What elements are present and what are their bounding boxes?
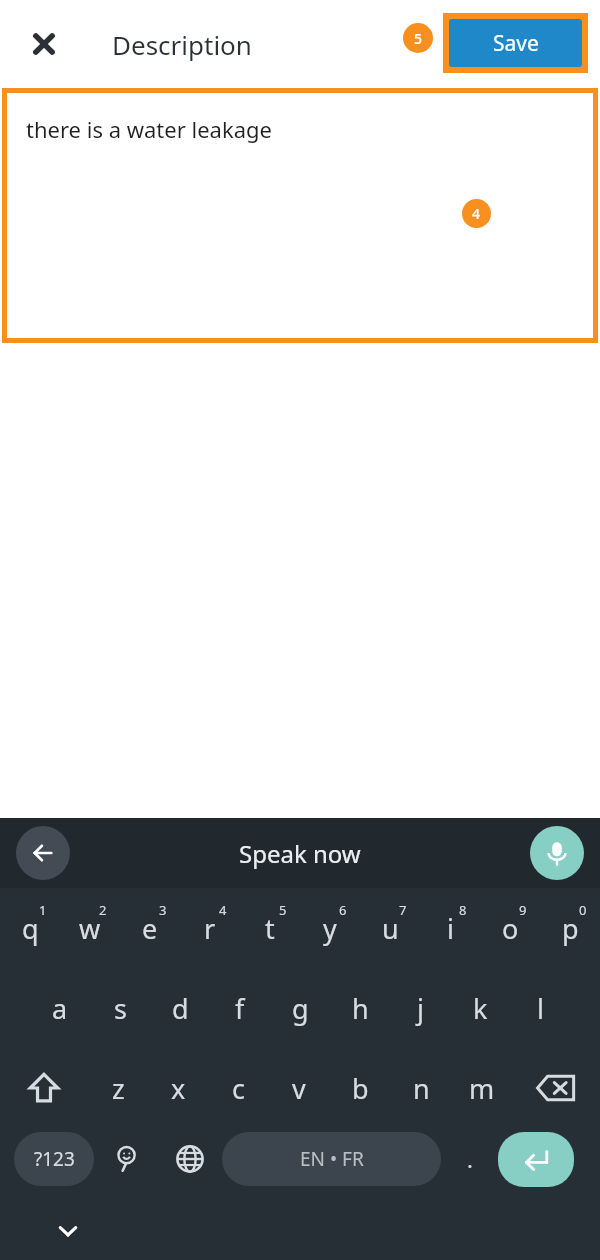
staticText: u	[382, 910, 399, 947]
staticText: 6	[339, 901, 347, 919]
button[interactable]: Enter	[498, 1132, 574, 1187]
staticText: 5	[279, 901, 287, 919]
staticText: z	[112, 1070, 125, 1107]
staticText: d	[172, 990, 189, 1027]
staticText: ?123	[34, 1146, 75, 1172]
staticText: 7	[399, 901, 407, 919]
staticText: Description	[112, 27, 252, 62]
staticText: l	[537, 990, 544, 1027]
button[interactable]: b	[331, 1049, 389, 1127]
staticText: w	[79, 910, 101, 947]
button[interactable]: g	[271, 969, 329, 1047]
staticText: g	[292, 990, 309, 1027]
button[interactable]: o	[481, 889, 539, 967]
button[interactable]: Back	[16, 826, 70, 880]
staticText: i	[447, 910, 454, 947]
staticText: 5	[414, 29, 423, 48]
button[interactable]: Emoji	[94, 1132, 158, 1186]
staticText: b	[352, 1070, 369, 1107]
staticText: there is a water leakage	[26, 114, 272, 144]
button[interactable]: q	[1, 889, 59, 967]
staticText: EN • FR	[300, 1146, 364, 1172]
staticText: 8	[459, 901, 467, 919]
staticText: r	[204, 910, 216, 947]
button[interactable]: k	[451, 969, 509, 1047]
button[interactable]: u	[361, 889, 419, 967]
button[interactable]: Close	[22, 22, 66, 66]
staticText: v	[292, 1070, 306, 1107]
button[interactable]: s	[91, 969, 149, 1047]
button[interactable]: Shift	[0, 1049, 88, 1127]
button[interactable]: t	[241, 889, 299, 967]
button[interactable]: f	[211, 969, 269, 1047]
button[interactable]: i	[421, 889, 479, 967]
button[interactable]: v	[270, 1049, 328, 1127]
button[interactable]: j	[391, 969, 449, 1047]
staticText: p	[562, 910, 579, 947]
staticText: n	[413, 1070, 430, 1107]
button[interactable]: Change language	[158, 1132, 222, 1186]
staticText: 3	[159, 901, 167, 919]
staticText: m	[469, 1070, 495, 1107]
button[interactable]: there is a water leakage	[2, 88, 598, 343]
button[interactable]: p	[541, 889, 599, 967]
button[interactable]: .	[441, 1132, 498, 1186]
staticText: t	[265, 910, 275, 947]
staticText: h	[352, 990, 369, 1027]
staticText: a	[52, 990, 68, 1027]
staticText: s	[114, 990, 127, 1027]
button[interactable]: y	[301, 889, 359, 967]
staticText: x	[171, 1070, 186, 1107]
staticText: e	[142, 910, 158, 947]
staticText: Save	[493, 29, 539, 58]
staticText: q	[22, 910, 39, 947]
staticText: j	[417, 990, 424, 1027]
button[interactable]: m	[453, 1049, 511, 1127]
button[interactable]: x	[149, 1049, 207, 1127]
button[interactable]: d	[151, 969, 209, 1047]
staticText: f	[235, 990, 245, 1027]
staticText: 9	[519, 901, 527, 919]
button[interactable]: Save	[449, 19, 582, 67]
staticText: y	[323, 910, 337, 947]
button[interactable]: Microphone	[530, 826, 584, 880]
button[interactable]: r	[181, 889, 239, 967]
button[interactable]: z	[89, 1049, 147, 1127]
button[interactable]: e	[121, 889, 179, 967]
button[interactable]: EN • FR	[222, 1132, 441, 1186]
button[interactable]: ?123	[14, 1132, 94, 1186]
staticText: Speak now	[239, 837, 361, 870]
button[interactable]: Hide keyboard	[48, 1211, 88, 1251]
staticText: 4	[219, 901, 227, 919]
staticText: k	[473, 990, 488, 1027]
button[interactable]: l	[511, 969, 569, 1047]
staticText: 0	[579, 901, 587, 919]
button[interactable]: w	[61, 889, 119, 967]
button[interactable]: n	[392, 1049, 450, 1127]
staticText: 4	[472, 204, 481, 223]
button[interactable]: a	[31, 969, 89, 1047]
button[interactable]: h	[331, 969, 389, 1047]
button[interactable]: c	[209, 1049, 267, 1127]
staticText: c	[232, 1070, 245, 1107]
staticText: .	[467, 1144, 473, 1174]
staticText: 2	[99, 901, 107, 919]
button[interactable]: Backspace	[512, 1049, 600, 1127]
staticText: 1	[39, 901, 47, 919]
staticText: o	[502, 910, 519, 947]
